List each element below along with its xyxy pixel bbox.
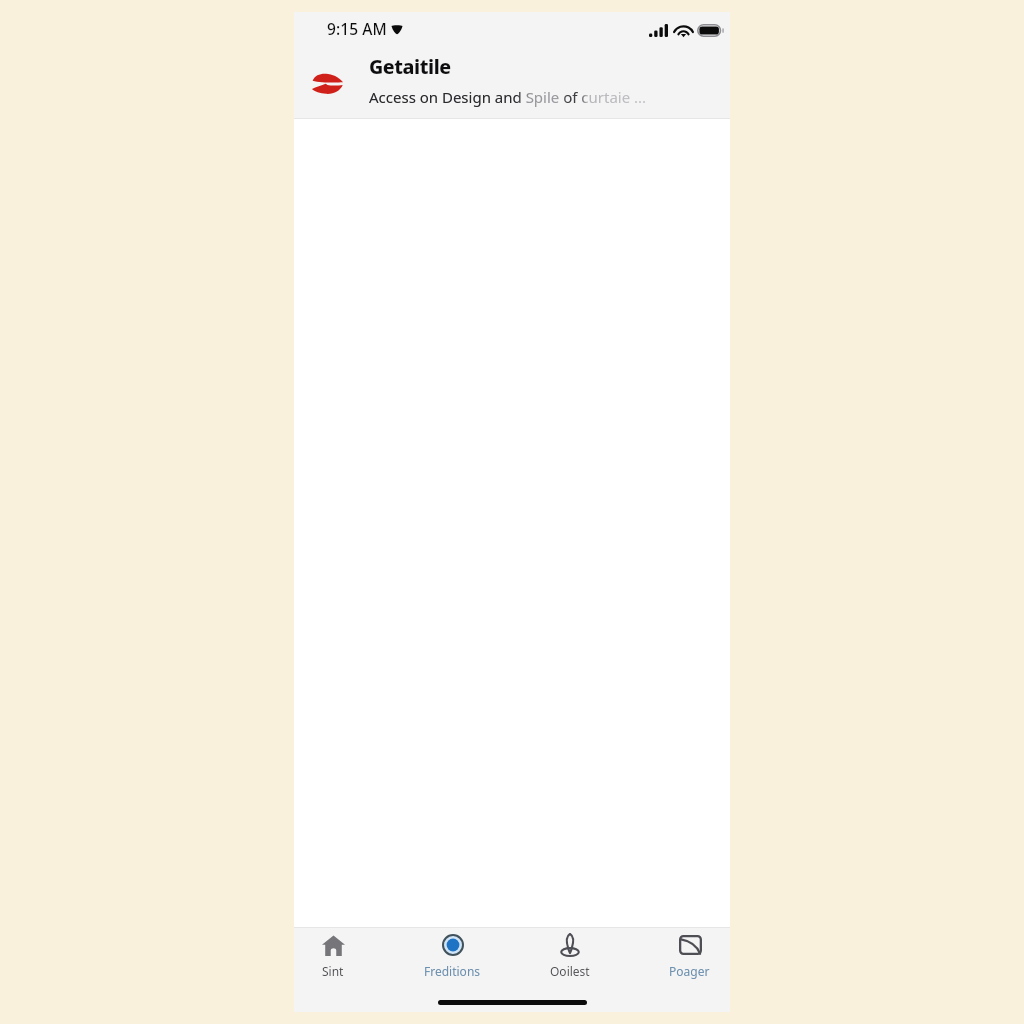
- other: Home: [322, 934, 345, 957]
- button[interactable]: Ooilest: [520, 928, 620, 984]
- staticText: Sint: [322, 963, 344, 979]
- other: App logo: [312, 72, 343, 95]
- staticText: Ooilest: [550, 963, 590, 979]
- other: Poager: [679, 935, 702, 955]
- button[interactable]: Poager: [639, 928, 739, 984]
- button[interactable]: Freditions: [402, 928, 502, 984]
- staticText: Poager: [669, 963, 710, 979]
- other: Wi-Fi: [675, 24, 692, 37]
- staticText: Freditions: [424, 963, 481, 979]
- other: Battery: [697, 24, 724, 37]
- button[interactable]: Home: [283, 928, 383, 984]
- staticText: Getaitile: [369, 53, 451, 80]
- button[interactable]: App logo: [294, 49, 730, 118]
- other: Freditions: [442, 934, 464, 956]
- other: Ooilest: [560, 933, 580, 957]
- staticText: Access on Design and Spile of curtaie ..…: [369, 87, 647, 107]
- other: Cellular signal: [649, 24, 668, 37]
- staticText: 9:15 AM: [327, 18, 387, 39]
